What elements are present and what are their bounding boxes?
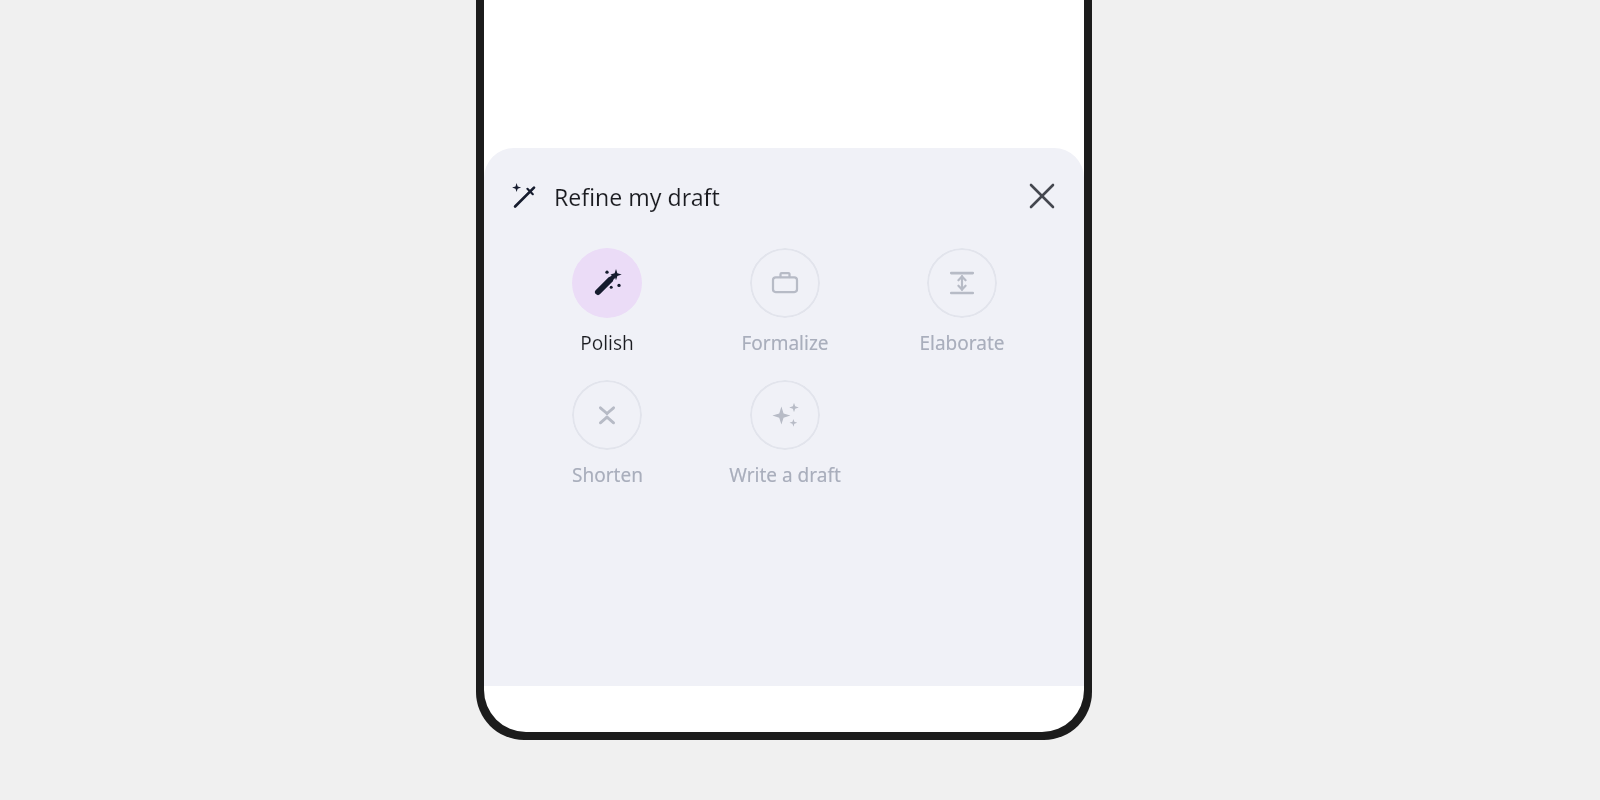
staticText: Refine my draft [554,181,720,212]
button[interactable]: Shorten [518,374,696,494]
button[interactable]: Polish [518,242,696,362]
button[interactable]: Close [1020,174,1064,218]
button[interactable]: Elaborate [873,242,1050,362]
staticText: Write a draft [729,462,841,488]
staticText: Formalize [741,330,829,356]
staticText: Polish [580,330,634,356]
staticText: Shorten [572,462,643,488]
staticText: Elaborate [919,330,1005,356]
button[interactable]: Write a draft [696,374,873,494]
button[interactable]: Formalize [696,242,873,362]
